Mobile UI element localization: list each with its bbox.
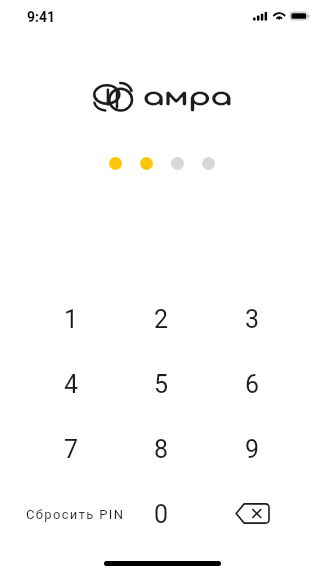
staticText: 7 bbox=[64, 435, 79, 464]
staticText: 9:41 bbox=[27, 9, 56, 25]
button[interactable]: 9 bbox=[207, 417, 298, 482]
button[interactable]: 3 bbox=[207, 287, 298, 352]
button[interactable]: Backspace bbox=[207, 482, 298, 547]
staticText: 1 bbox=[64, 305, 79, 334]
button[interactable]: 6 bbox=[207, 352, 298, 417]
staticText: 8 bbox=[154, 435, 169, 464]
staticText: 3 bbox=[245, 305, 260, 334]
staticText: 6 bbox=[245, 370, 260, 399]
button[interactable]: 5 bbox=[116, 352, 207, 417]
staticText: 4 bbox=[64, 370, 79, 399]
staticText: 0 bbox=[154, 500, 169, 529]
button[interactable]: 4 bbox=[26, 352, 116, 417]
button[interactable]: 7 bbox=[26, 417, 116, 482]
button[interactable]: 2 bbox=[116, 287, 207, 352]
staticText: 9 bbox=[245, 435, 260, 464]
button[interactable]: 8 bbox=[116, 417, 207, 482]
staticText: амра bbox=[143, 84, 233, 111]
staticText: 2 bbox=[154, 305, 169, 334]
button[interactable]: 0 bbox=[116, 482, 207, 547]
button[interactable]: Сбросить PIN bbox=[26, 482, 116, 547]
staticText: 5 bbox=[154, 370, 169, 399]
button[interactable]: 1 bbox=[26, 287, 116, 352]
staticText: Сбросить PIN bbox=[26, 507, 125, 522]
